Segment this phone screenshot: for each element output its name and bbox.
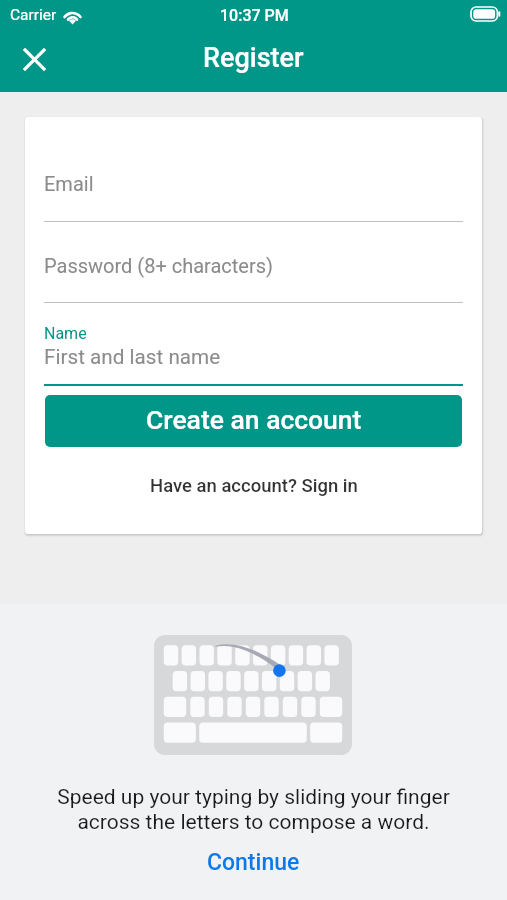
staticText: Speed up your typing by sliding your fin… — [57, 785, 450, 835]
staticText: Password (8+ characters) — [44, 254, 274, 277]
staticText: Create an account — [146, 404, 362, 435]
staticText: First and last name — [44, 345, 221, 369]
staticText: Continue — [207, 849, 300, 876]
button[interactable]: Continue — [181, 844, 326, 881]
staticText: Name — [44, 324, 87, 343]
button[interactable]: Name — [44, 322, 463, 387]
button[interactable]: Close — [14, 39, 55, 80]
staticText: Register — [203, 42, 304, 74]
button[interactable]: Password (8+ characters) — [44, 249, 463, 307]
staticText: Have an account? Sign in — [150, 475, 358, 497]
staticText: 10:37 PM — [220, 6, 289, 25]
staticText: Email — [44, 172, 94, 195]
button[interactable]: Create an account — [45, 395, 462, 447]
staticText: Carrier — [10, 6, 57, 24]
button[interactable]: Have an account? Sign in — [25, 468, 482, 504]
button[interactable]: Email — [44, 167, 463, 225]
